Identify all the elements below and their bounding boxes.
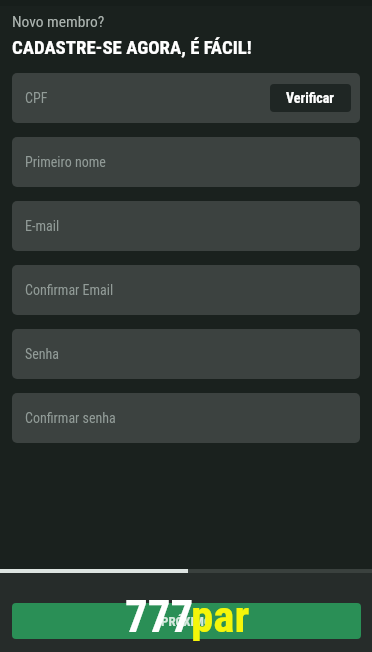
- staticText: 777: [125, 590, 194, 643]
- button[interactable]: Confirmar Email: [12, 265, 360, 315]
- staticText: Primeiro nome: [25, 154, 106, 170]
- staticText: PRÓXIMO: [161, 614, 212, 629]
- staticText: E-mail: [25, 218, 60, 234]
- button[interactable]: PRÓXIMO: [12, 603, 361, 639]
- staticText: Confirmar senha: [25, 410, 116, 426]
- button[interactable]: Confirmar senha: [12, 393, 360, 443]
- staticText: par: [191, 590, 250, 643]
- button[interactable]: CPF: [12, 73, 360, 123]
- staticText: CPF: [25, 90, 48, 106]
- staticText: Novo membro?: [12, 13, 105, 31]
- button[interactable]: Primeiro nome: [12, 137, 360, 187]
- staticText: Verificar: [286, 90, 335, 106]
- staticText: CADASTRE-SE AGORA, É FÁCIL!: [12, 37, 252, 59]
- button[interactable]: Senha: [12, 329, 360, 379]
- button[interactable]: E-mail: [12, 201, 360, 251]
- staticText: Senha: [25, 346, 60, 362]
- button[interactable]: Verificar: [270, 84, 351, 112]
- staticText: Confirmar Email: [25, 282, 114, 298]
